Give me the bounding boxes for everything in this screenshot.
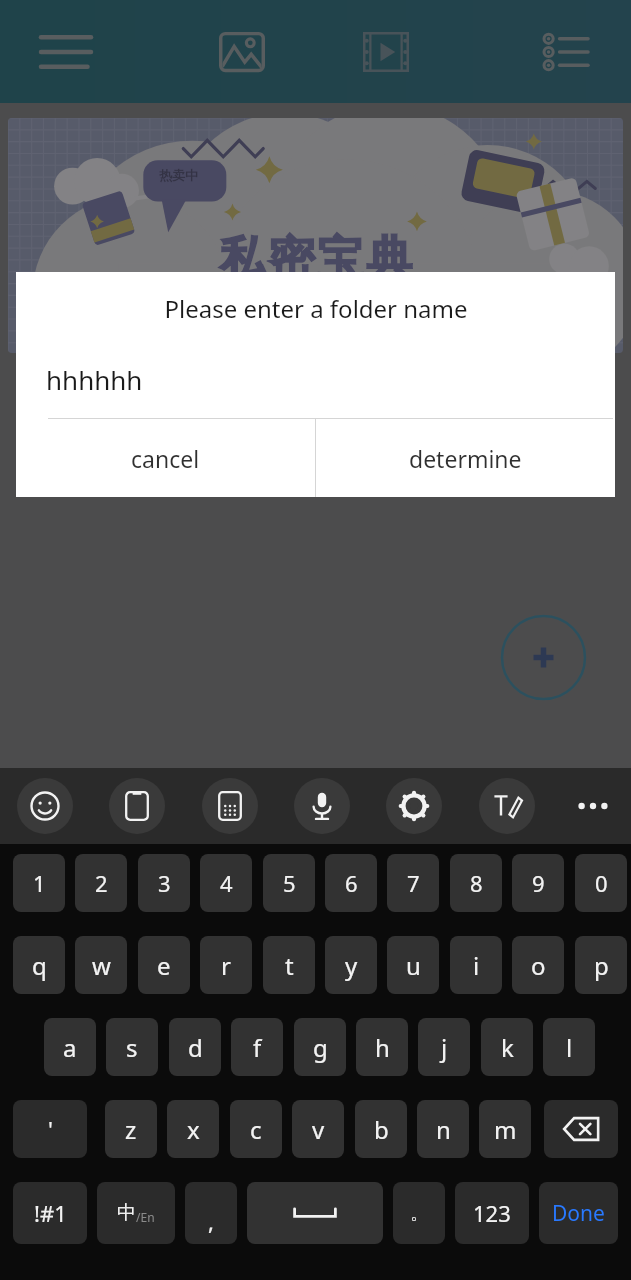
button[interactable]: j (418, 1018, 470, 1076)
staticText: y (345, 949, 358, 982)
button[interactable]: f (231, 1018, 283, 1076)
staticText: 6 (345, 868, 358, 898)
button[interactable]: r (200, 936, 252, 994)
button[interactable]: d (169, 1018, 221, 1076)
button[interactable]: i (450, 936, 502, 994)
button[interactable]: Photos (208, 20, 276, 84)
staticText: k (501, 1031, 514, 1064)
button[interactable]: c (230, 1100, 282, 1158)
button[interactable]: 4 (200, 854, 252, 912)
button[interactable]: cancel (16, 419, 315, 497)
button[interactable]: Menu (28, 22, 104, 82)
staticText: m (494, 1113, 517, 1146)
button[interactable]: 7 (387, 854, 439, 912)
staticText: 中 (117, 1201, 136, 1225)
button[interactable]: h (356, 1018, 408, 1076)
button[interactable]: p (575, 936, 627, 994)
button[interactable]: Add (500, 614, 587, 701)
button[interactable]: Emoji (17, 778, 73, 834)
staticText: Please enter a folder name (164, 292, 468, 325)
staticText: c (250, 1113, 262, 1146)
button[interactable]: Voice input (294, 778, 350, 834)
button[interactable]: 2 (75, 854, 127, 912)
button[interactable]: w (75, 936, 127, 994)
button[interactable]: determine (316, 419, 615, 497)
button[interactable]: Space (247, 1182, 383, 1244)
staticText: determine (409, 443, 522, 474)
button[interactable]: Clipboard (109, 778, 165, 834)
button[interactable]: z (105, 1100, 157, 1158)
button[interactable]: a (44, 1018, 96, 1076)
staticText: ' (48, 1114, 53, 1144)
staticText: g (313, 1031, 328, 1064)
staticText: d (188, 1031, 203, 1064)
staticText: 4 (220, 868, 233, 898)
staticText: j (441, 1031, 448, 1064)
staticText: x (187, 1113, 200, 1146)
button[interactable]: Settings (386, 778, 442, 834)
button[interactable]: Handwriting (479, 778, 535, 834)
staticText: n (436, 1113, 451, 1146)
staticText: z (125, 1113, 137, 1146)
staticText: 8 (470, 868, 483, 898)
button[interactable]: Switch language (97, 1182, 175, 1244)
button[interactable]: t (263, 936, 315, 994)
staticText: /En (136, 1209, 155, 1225)
staticText: 9 (532, 868, 545, 898)
button[interactable]: 5 (263, 854, 315, 912)
button[interactable]: n (417, 1100, 469, 1158)
staticText: f (253, 1031, 262, 1064)
button[interactable]: 9 (512, 854, 564, 912)
button[interactable]: m (479, 1100, 531, 1158)
staticText: 热卖中 (159, 167, 198, 183)
button[interactable]: k (481, 1018, 533, 1076)
button[interactable]: , (185, 1182, 237, 1244)
staticText: cancel (131, 443, 200, 474)
staticText: 3 (158, 868, 171, 898)
staticText: u (406, 949, 421, 982)
button[interactable]: More options (565, 778, 621, 834)
button[interactable]: o (512, 936, 564, 994)
button[interactable]: 1 (13, 854, 65, 912)
staticText: !#1 (34, 1198, 67, 1228)
button[interactable]: v (292, 1100, 344, 1158)
button[interactable]: s (106, 1018, 158, 1076)
staticText: r (221, 949, 231, 982)
button[interactable]: Videos (352, 20, 420, 84)
button[interactable]: ' (13, 1100, 87, 1158)
button[interactable]: 6 (325, 854, 377, 912)
button[interactable]: 。 (393, 1182, 445, 1244)
button[interactable]: 0 (575, 854, 627, 912)
button[interactable]: u (387, 936, 439, 994)
staticText: Done (552, 1199, 605, 1228)
staticText: p (594, 949, 609, 982)
button[interactable]: g (294, 1018, 346, 1076)
button[interactable]: Keyboard (202, 778, 258, 834)
staticText: , (208, 1206, 214, 1236)
staticText: 。 (410, 1202, 428, 1225)
staticText: hhhhhh (46, 362, 143, 397)
button[interactable]: 8 (450, 854, 502, 912)
button[interactable]: x (167, 1100, 219, 1158)
button[interactable]: y (325, 936, 377, 994)
button[interactable]: !#1 (13, 1182, 87, 1244)
staticText: 123 (473, 1198, 511, 1228)
staticText: 7 (407, 868, 420, 898)
staticText: w (92, 949, 111, 982)
button[interactable]: Backspace (544, 1100, 618, 1158)
button[interactable]: 3 (138, 854, 190, 912)
button[interactable]: List (530, 20, 602, 84)
button[interactable]: l (543, 1018, 595, 1076)
button[interactable]: e (138, 936, 190, 994)
button[interactable]: b (355, 1100, 407, 1158)
staticText: s (126, 1031, 138, 1064)
button[interactable]: 私密宝典 (8, 118, 623, 353)
button[interactable]: Done (539, 1182, 618, 1244)
staticText: e (157, 949, 171, 982)
staticText: v (312, 1113, 325, 1146)
button[interactable]: q (13, 936, 65, 994)
staticText: t (285, 949, 294, 982)
staticText: i (473, 949, 480, 982)
staticText: 2 (95, 868, 108, 898)
button[interactable]: 123 (455, 1182, 529, 1244)
